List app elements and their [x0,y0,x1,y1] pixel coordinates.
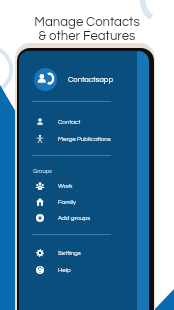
button[interactable]: Merge Publications [19,131,137,147]
button[interactable]: Family [19,194,137,210]
staticText: Family [58,199,77,205]
button[interactable]: Settings [19,245,137,261]
staticText: Contactsapp [68,76,114,84]
button[interactable]: Contactsapp [34,68,129,91]
staticText: Settings [58,250,81,256]
staticText: Contact [58,119,81,125]
staticText: Manage Contacts & other Features [34,15,140,42]
button[interactable]: Add groups [19,210,137,226]
staticText: Merge Publications [58,136,111,142]
button[interactable]: Work [19,178,137,194]
button[interactable]: Contact [19,114,137,130]
staticText: Work [58,183,73,189]
staticText: Help [58,267,71,273]
staticText: Groups [33,168,52,174]
button[interactable]: Help [19,262,137,278]
staticText: Add groups [58,215,91,221]
